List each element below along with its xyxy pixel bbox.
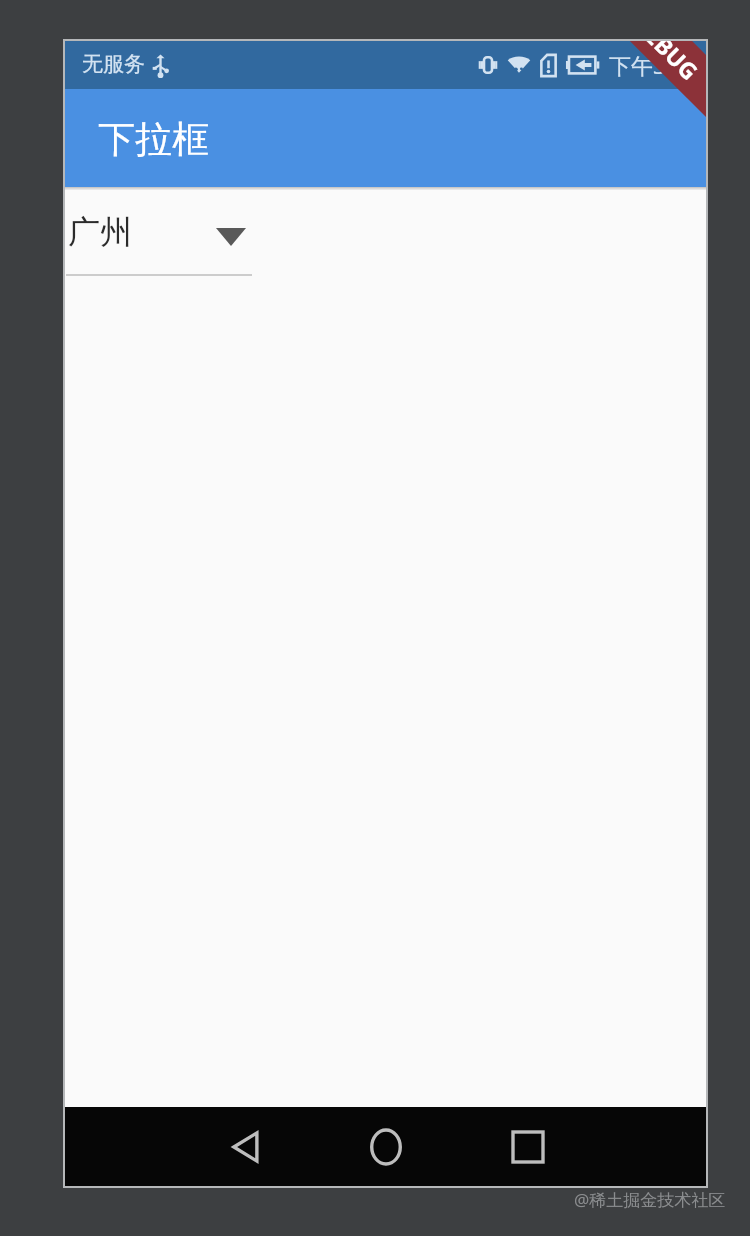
button[interactable]: 广州 (66, 208, 252, 276)
staticText: 下拉框 (98, 116, 209, 163)
staticText: 无服务 (82, 51, 145, 77)
button[interactable]: Back (201, 1107, 291, 1186)
staticText: DEBUG (627, 41, 706, 87)
staticText: 广州 (68, 212, 132, 252)
staticText: @稀土掘金技术社区 (574, 1188, 726, 1211)
button[interactable]: Home (341, 1107, 431, 1186)
button[interactable]: Recent apps (483, 1107, 573, 1186)
staticText: 下午3:27 (609, 50, 697, 80)
